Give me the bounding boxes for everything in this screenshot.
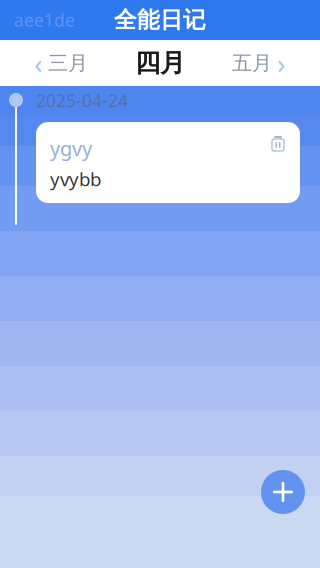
staticText: 四月 <box>135 47 185 78</box>
staticText: ygvy <box>50 135 92 162</box>
staticText: 2025-04-24 <box>36 89 128 112</box>
button[interactable]: Add diary entry <box>256 465 310 519</box>
staticText: 三月 <box>48 51 88 75</box>
button[interactable]: 四月 <box>125 41 195 84</box>
staticText: ‹ <box>34 44 43 82</box>
staticText: 五月 <box>232 51 272 75</box>
button[interactable]: ygvy <box>36 122 300 203</box>
button[interactable]: ‹ <box>24 36 98 90</box>
button[interactable]: 五月 <box>222 36 296 90</box>
staticText: yvybb <box>50 167 101 191</box>
staticText: 全能日记 <box>114 6 206 34</box>
staticText: › <box>277 44 286 82</box>
staticText: aee1de <box>14 8 75 31</box>
